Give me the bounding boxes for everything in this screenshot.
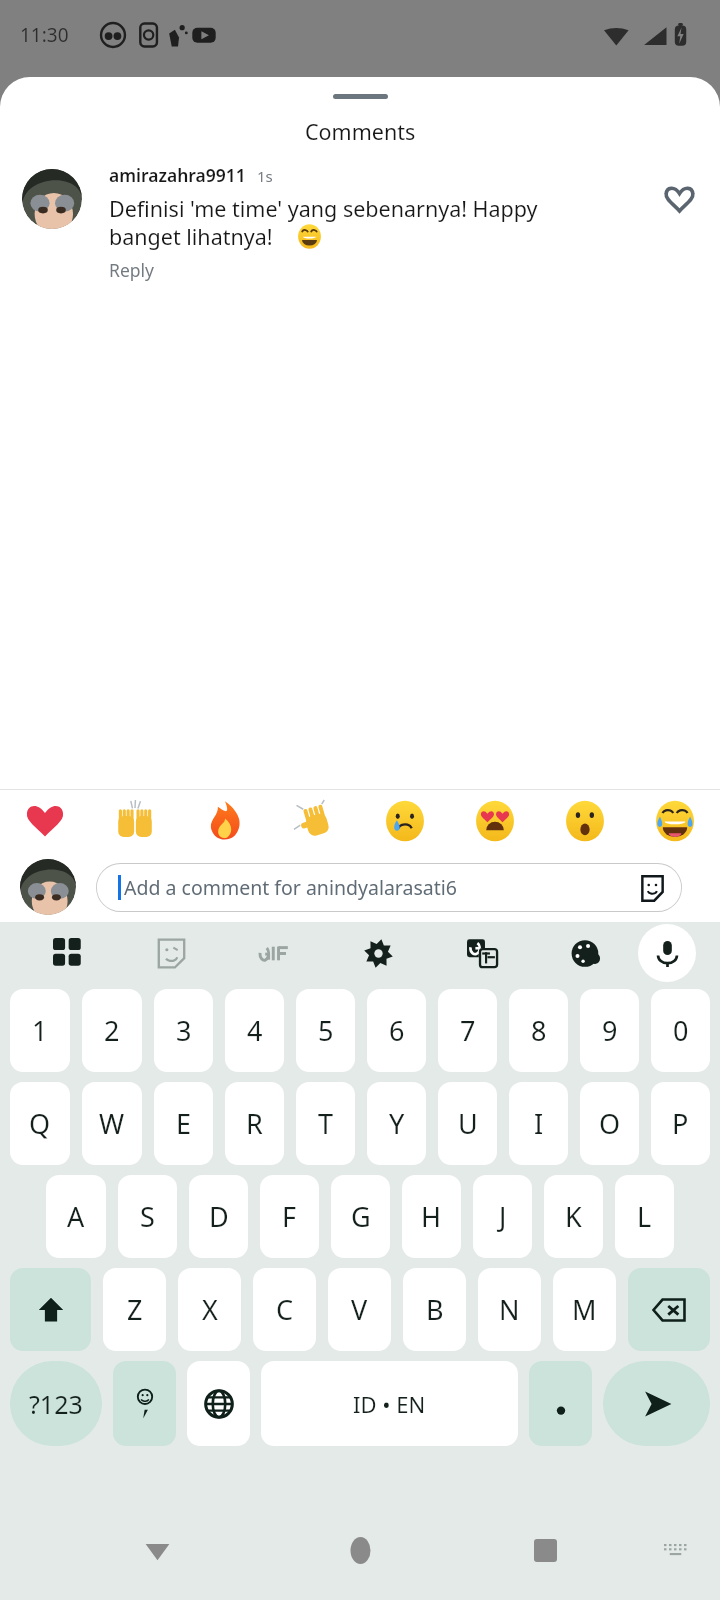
button[interactable]: A [46, 1175, 106, 1258]
staticText: U [458, 1105, 478, 1142]
staticText: E [176, 1105, 192, 1142]
button[interactable]: 1 [10, 989, 70, 1072]
button[interactable]: Z [103, 1268, 166, 1351]
staticText: 1 [32, 1012, 48, 1049]
button[interactable]: React raise [90, 790, 180, 852]
staticText: 2 [104, 1012, 120, 1049]
button[interactable]: V [328, 1268, 391, 1351]
staticText: 7 [460, 1012, 476, 1049]
button[interactable]: K [544, 1175, 603, 1258]
button[interactable]: translate [459, 930, 505, 976]
button[interactable]: O [580, 1082, 639, 1165]
staticText: 9 [602, 1012, 618, 1049]
button[interactable]: I [509, 1082, 568, 1165]
button[interactable]: Switch keyboard [650, 1525, 700, 1575]
button[interactable]: D [189, 1175, 248, 1258]
button[interactable]: X [178, 1268, 241, 1351]
staticText: 6 [389, 1012, 405, 1049]
staticText: Reply [109, 258, 154, 282]
button[interactable]: React heart [0, 790, 90, 852]
staticText: I [534, 1105, 544, 1142]
button[interactable]: Home [331, 1521, 389, 1579]
staticText: 11:30 [20, 22, 69, 48]
button[interactable]: React lol [630, 790, 720, 852]
button[interactable]: Hide keyboard [128, 1521, 186, 1579]
button[interactable]: Reply [109, 256, 154, 284]
staticText: A [67, 1198, 85, 1235]
button[interactable]: ID • EN [261, 1361, 518, 1446]
button[interactable]: send [603, 1361, 710, 1446]
button[interactable]: B [403, 1268, 466, 1351]
button[interactable]: React wave [270, 790, 360, 852]
button[interactable]: ?123 [10, 1361, 102, 1446]
button[interactable]: N [478, 1268, 541, 1351]
staticText: Y [389, 1105, 405, 1142]
button[interactable]: grid [45, 930, 91, 976]
staticText: Z [127, 1291, 143, 1328]
button[interactable]: J [473, 1175, 532, 1258]
button[interactable]: 6 [367, 989, 426, 1072]
button[interactable]: Y [367, 1082, 426, 1165]
button[interactable]: gif [251, 930, 297, 976]
staticText: Definisi 'me time' yang sebenarnya! Happ… [109, 194, 538, 251]
button[interactable]: L [615, 1175, 674, 1258]
button[interactable]: settings [355, 930, 401, 976]
button[interactable]: 4 [225, 989, 284, 1072]
staticText: ?123 [29, 1387, 83, 1421]
staticText: Comments [305, 117, 416, 146]
button[interactable]: globe [187, 1361, 250, 1446]
staticText: 3 [176, 1012, 192, 1049]
staticText: amirazahra9911 [109, 163, 246, 187]
button[interactable]: C [253, 1268, 316, 1351]
button[interactable]: period [529, 1361, 592, 1446]
staticText: M [572, 1291, 597, 1328]
button[interactable]: Add a comment for anindyalarasati6 [96, 863, 682, 912]
staticText: Q [29, 1105, 51, 1142]
button[interactable]: Like comment [656, 175, 702, 221]
staticText: T [318, 1105, 334, 1142]
button[interactable]: W [82, 1082, 142, 1165]
staticText: P [672, 1105, 689, 1142]
button[interactable]: R [225, 1082, 284, 1165]
button[interactable]: M [553, 1268, 616, 1351]
button[interactable]: P [651, 1082, 710, 1165]
button[interactable]: 5 [296, 989, 355, 1072]
button[interactable]: back [628, 1268, 710, 1351]
staticText: N [499, 1291, 520, 1328]
staticText: K [565, 1198, 582, 1235]
staticText: B [426, 1291, 444, 1328]
button[interactable]: G [331, 1175, 390, 1258]
button[interactable]: 7 [438, 989, 497, 1072]
staticText: 4 [247, 1012, 263, 1049]
staticText: Add a comment for anindyalarasati6 [124, 874, 636, 901]
button[interactable]: 3 [154, 989, 213, 1072]
button[interactable]: React cry [360, 790, 450, 852]
staticText: H [421, 1198, 442, 1235]
button[interactable]: React open [540, 790, 630, 852]
button[interactable]: 2 [82, 989, 142, 1072]
button[interactable]: Recent apps [516, 1521, 574, 1579]
button[interactable]: sticker [148, 930, 194, 976]
button[interactable]: U [438, 1082, 497, 1165]
staticText: J [499, 1198, 507, 1235]
button[interactable]: 0 [651, 989, 710, 1072]
button[interactable]: React fire [180, 790, 270, 852]
button[interactable]: E [154, 1082, 213, 1165]
button[interactable]: Voice input [638, 924, 696, 982]
staticText: F [282, 1198, 297, 1235]
button[interactable]: React love [450, 790, 540, 852]
button[interactable]: T [296, 1082, 355, 1165]
staticText: 0 [673, 1012, 689, 1049]
button[interactable]: F [260, 1175, 319, 1258]
button[interactable]: shift [10, 1268, 91, 1351]
button[interactable]: 8 [509, 989, 568, 1072]
staticText: 8 [531, 1012, 547, 1049]
staticText: G [351, 1198, 371, 1235]
button[interactable]: 9 [580, 989, 639, 1072]
button[interactable]: emojiComma [113, 1361, 176, 1446]
button[interactable]: Q [10, 1082, 70, 1165]
button[interactable]: H [402, 1175, 461, 1258]
button[interactable]: theme [563, 930, 609, 976]
button[interactable]: S [118, 1175, 177, 1258]
staticText: D [209, 1198, 229, 1235]
